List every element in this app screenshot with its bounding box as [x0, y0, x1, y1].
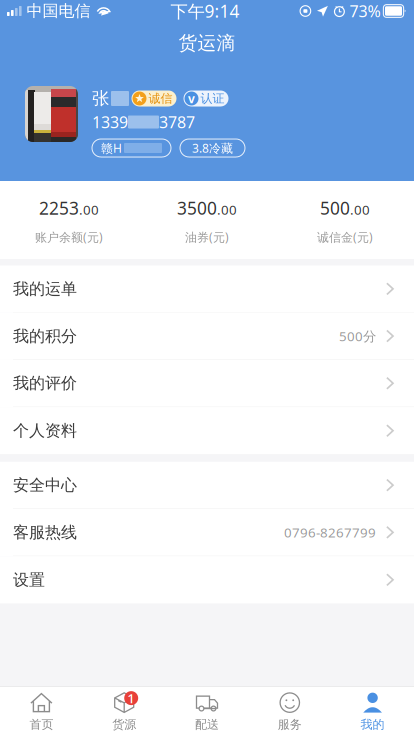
staticText: 我的积分	[13, 326, 77, 346]
button[interactable]: 我的积分	[0, 313, 414, 360]
staticText: 3.8冷藏	[192, 140, 233, 156]
staticText: .00	[217, 201, 237, 218]
staticText: 首页	[29, 717, 53, 732]
button[interactable]: 1	[83, 687, 166, 736]
button[interactable]: 我的运单	[0, 265, 414, 313]
button[interactable]: 我的	[331, 687, 414, 736]
button[interactable]: 配送	[166, 687, 248, 736]
staticText: 认证	[200, 91, 224, 106]
staticText: 张	[92, 88, 109, 109]
staticText: 安全中心	[13, 475, 77, 495]
staticText: 3500	[177, 196, 217, 219]
staticText: .00	[79, 201, 99, 218]
staticText: 我的运单	[13, 279, 77, 299]
button[interactable]: 个人资料	[0, 407, 414, 454]
staticText: 我的	[361, 717, 385, 732]
staticText: 诚信	[148, 91, 172, 106]
staticText: 下午9:14	[170, 0, 239, 22]
staticText: 1339	[92, 111, 128, 133]
staticText: 账户余额(元)	[35, 229, 103, 245]
staticText: v	[188, 90, 195, 106]
staticText: 2253	[39, 196, 79, 219]
staticText: 服务	[278, 717, 302, 732]
staticText: 货源	[112, 717, 136, 732]
staticText: 油券(元)	[185, 229, 229, 245]
button[interactable]: 我的评价	[0, 360, 414, 407]
staticText: 500分	[339, 327, 376, 345]
button[interactable]: 安全中心	[0, 462, 414, 509]
staticText: 配送	[195, 717, 219, 732]
staticText: 中国电信	[27, 1, 91, 21]
staticText: 赣H	[101, 140, 122, 156]
staticText: 3787	[159, 111, 195, 133]
button[interactable]: 客服热线	[0, 509, 414, 556]
staticText: 设置	[13, 570, 45, 590]
staticText: 货运滴	[178, 31, 235, 54]
button[interactable]: 服务	[248, 687, 331, 736]
staticText: 客服热线	[13, 522, 77, 542]
staticText: .00	[350, 201, 370, 218]
staticText: 我的评价	[13, 373, 77, 393]
staticText: 1	[127, 689, 135, 707]
button[interactable]: 设置	[0, 556, 414, 603]
staticText: 个人资料	[13, 421, 77, 441]
button[interactable]: 首页	[0, 687, 83, 736]
staticText: 诚信金(元)	[317, 229, 373, 245]
staticText: 0796-8267799	[284, 523, 376, 541]
staticText: 500	[320, 196, 350, 219]
staticText: 73%	[349, 0, 380, 22]
